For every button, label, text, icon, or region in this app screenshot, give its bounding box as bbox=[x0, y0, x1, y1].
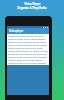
staticText: Organize & Play Media bbox=[17, 6, 47, 10]
button[interactable]: Subtitle support with encoding options bbox=[8, 59, 48, 65]
staticText: Manage all the video files on your devic… bbox=[8, 35, 45, 38]
button[interactable]: Resume playing where you stopped last ti… bbox=[8, 50, 48, 59]
staticText: Videoplayer bbox=[9, 29, 24, 33]
button[interactable]: Supports most of the video formats codec… bbox=[8, 41, 48, 50]
staticText: Simple and clean material design interfa… bbox=[8, 62, 46, 65]
staticText: Gestures control volume and the brightne… bbox=[8, 56, 48, 59]
staticText: Video Player bbox=[24, 2, 41, 6]
button[interactable]: Videoplayer bbox=[7, 28, 49, 34]
staticText: Supports most of the video formats codec… bbox=[8, 41, 47, 44]
staticText: Subtitle support with encoding options bbox=[8, 59, 43, 62]
staticText: Fast and smooth hardware decoding engine bbox=[8, 44, 48, 47]
staticText: Background audio playback and screen loc… bbox=[8, 53, 47, 56]
staticText: Browse by folder and start quick playbac… bbox=[8, 38, 45, 41]
staticText: Resume playing where you stopped last ti… bbox=[8, 50, 48, 53]
staticText: Create playlists and sort all your video… bbox=[8, 47, 43, 50]
button[interactable]: Manage all the video files on your devic… bbox=[8, 35, 48, 41]
